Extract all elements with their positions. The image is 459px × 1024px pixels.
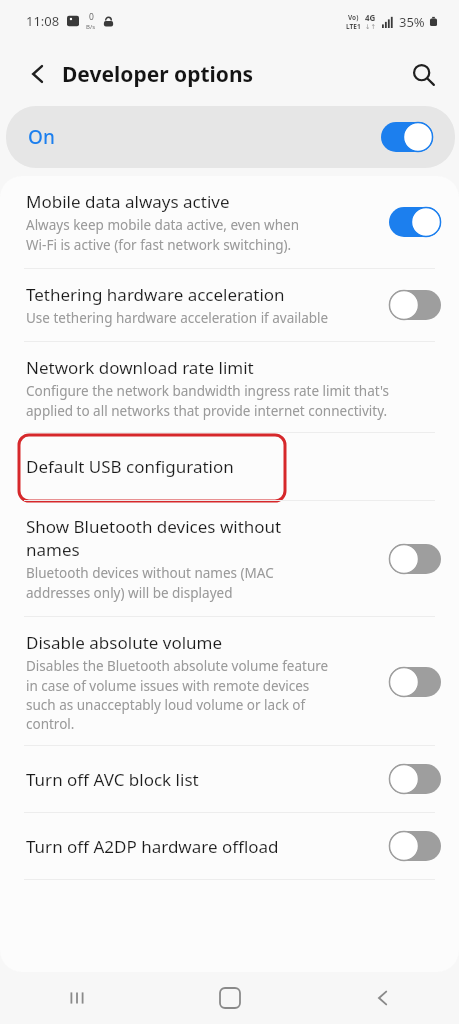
staticText: 4G: [365, 12, 376, 23]
staticText: B/s: [86, 23, 96, 31]
staticText: Always keep mobile data active, even whe…: [26, 216, 300, 254]
staticText: 11:08: [26, 12, 60, 30]
staticText: Turn off AVC block list: [26, 768, 199, 791]
button[interactable]: Disable absolute volume: [0, 617, 459, 745]
button[interactable]: Turn off AVC block list: [0, 746, 459, 812]
staticText: Disables the Bluetooth absolute volume f…: [26, 657, 329, 733]
staticText: Network download rate limit: [26, 356, 254, 379]
button[interactable]: Search: [399, 50, 447, 98]
staticText: Vo): [348, 13, 359, 22]
staticText: Configure the network bandwidth ingress …: [26, 382, 389, 420]
button[interactable]: Default USB configuration: [0, 433, 459, 500]
button[interactable]: Toggle on: [381, 122, 433, 152]
staticText: On: [28, 124, 55, 150]
button[interactable]: Toggle off: [389, 764, 441, 794]
staticText: 35%: [399, 13, 425, 31]
staticText: Disable absolute volume: [26, 631, 223, 654]
button[interactable]: Toggle off: [389, 831, 441, 861]
button[interactable]: Recent apps: [0, 972, 153, 1024]
button[interactable]: Toggle off: [389, 544, 441, 574]
button[interactable]: Home: [153, 972, 306, 1024]
staticText: LTE1: [346, 22, 361, 31]
button[interactable]: Back: [14, 50, 62, 98]
button[interactable]: Back: [306, 972, 459, 1024]
staticText: Default USB configuration: [26, 455, 234, 478]
staticText: Tethering hardware acceleration: [26, 283, 285, 306]
staticText: Show Bluetooth devices without names: [26, 515, 282, 561]
staticText: Turn off A2DP hardware offload: [26, 835, 279, 858]
button[interactable]: Tethering hardware acceleration: [0, 269, 459, 341]
staticText: Use tethering hardware acceleration if a…: [26, 309, 329, 327]
staticText: ↓↑: [365, 23, 376, 31]
button[interactable]: Mobile data always active: [0, 176, 459, 268]
button[interactable]: Toggle on: [389, 207, 441, 237]
button[interactable]: Turn off A2DP hardware offload: [0, 813, 459, 879]
button[interactable]: Network download rate limit: [0, 342, 459, 432]
staticText: Developer options: [62, 60, 254, 89]
button[interactable]: Toggle off: [389, 667, 441, 697]
staticText: 0: [89, 11, 94, 23]
staticText: Bluetooth devices without names (MAC add…: [26, 564, 274, 602]
staticText: Mobile data always active: [26, 190, 230, 213]
button[interactable]: Show Bluetooth devices without names: [0, 501, 459, 616]
button[interactable]: Toggle off: [389, 290, 441, 320]
button[interactable]: On: [6, 106, 455, 168]
